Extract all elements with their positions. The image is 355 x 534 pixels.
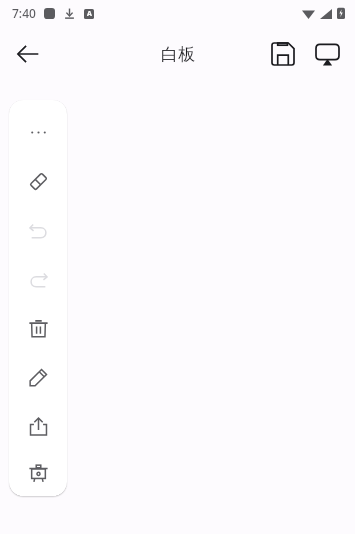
button[interactable]: Eraser bbox=[9, 157, 67, 206]
button[interactable]: Cast screen bbox=[305, 32, 349, 76]
staticText: 白板 bbox=[161, 44, 195, 65]
button[interactable]: Back bbox=[6, 32, 50, 76]
button[interactable]: Delete bbox=[9, 304, 67, 353]
button[interactable]: Presentation bbox=[9, 451, 67, 496]
staticText: 7:40 bbox=[12, 5, 36, 21]
button[interactable]: Redo bbox=[9, 255, 67, 304]
button[interactable]: Undo bbox=[9, 206, 67, 255]
button[interactable]: Share bbox=[9, 402, 67, 451]
staticText: A bbox=[87, 9, 92, 19]
button[interactable]: Save bbox=[261, 32, 305, 76]
button[interactable]: More options bbox=[9, 108, 67, 157]
button[interactable]: Pen bbox=[9, 353, 67, 402]
